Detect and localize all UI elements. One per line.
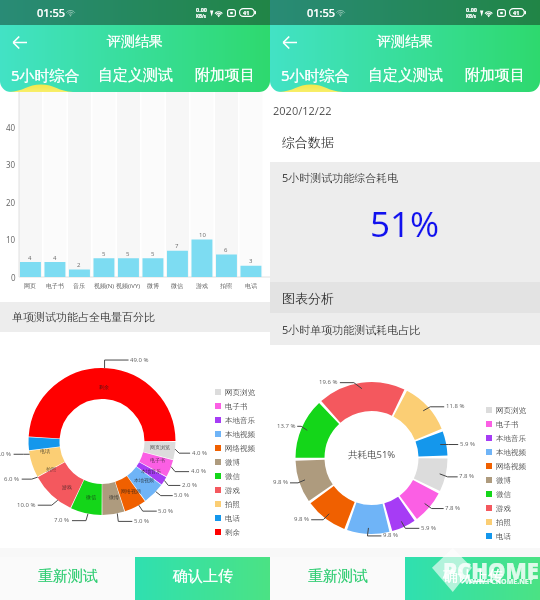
staticText: 30 xyxy=(6,159,16,170)
staticText: 附加项目 xyxy=(195,66,255,85)
staticText: 5.0 % xyxy=(134,517,150,525)
staticText: 评测结果 xyxy=(107,33,163,51)
staticText: 5.0 % xyxy=(158,507,174,515)
staticText: 19.6 % xyxy=(319,378,338,386)
staticText: 本地音乐 xyxy=(225,416,255,425)
staticText: 网页浏览 xyxy=(496,406,526,415)
staticText: 电话 xyxy=(225,514,240,523)
staticText: 10.0 % xyxy=(17,501,36,509)
button[interactable]: 自定义测试 xyxy=(360,58,450,92)
staticText: 41 xyxy=(243,9,250,16)
staticText: 音乐 xyxy=(73,282,85,290)
staticText: 5小时测试功能综合耗电 xyxy=(282,170,399,185)
staticText: 图表分析 xyxy=(282,290,334,306)
staticText: 微博 xyxy=(147,282,159,290)
staticText: 41 xyxy=(513,9,520,16)
staticText: 本地视频 xyxy=(496,448,526,457)
staticText: 网页 xyxy=(24,282,36,290)
staticText: 综合数据 xyxy=(282,134,334,150)
staticText: 5小时综合 xyxy=(11,65,80,85)
staticText: 网页浏览 xyxy=(225,388,255,397)
staticText: 5.9 % xyxy=(460,440,476,448)
staticText: KB/s xyxy=(466,13,477,19)
staticText: 20 xyxy=(6,197,16,208)
staticText: 3.0 % xyxy=(0,450,12,458)
staticText: 01:55 xyxy=(37,5,66,20)
staticText: 评测结果 xyxy=(377,33,433,51)
staticText: 微博 xyxy=(496,476,511,485)
staticText: 重新测试 xyxy=(308,567,368,586)
staticText: 游戏 xyxy=(225,486,240,495)
staticText: 电话 xyxy=(40,448,50,454)
staticText: 微信 xyxy=(171,282,183,290)
staticText: 自定义测试 xyxy=(98,66,173,85)
staticText: 游戏 xyxy=(196,282,208,290)
button[interactable]: 重新测试 xyxy=(0,557,135,600)
button[interactable]: 确认上传 xyxy=(135,557,270,600)
staticText: 7.0 % xyxy=(54,516,70,524)
staticText: 2020/12/22 xyxy=(273,103,332,118)
staticText: 网络视频 xyxy=(496,462,526,471)
staticText: 9.8 % xyxy=(294,515,310,523)
staticText: PCHOME xyxy=(443,555,539,585)
staticText: 电子书 xyxy=(46,282,64,290)
staticText: 10 xyxy=(6,234,16,245)
button[interactable]: Back xyxy=(276,29,302,55)
button[interactable]: Back xyxy=(6,29,32,55)
staticText: 0 xyxy=(11,272,16,283)
staticText: 视频(N) xyxy=(94,282,115,290)
staticText: 单项测试功能占全电量百分比 xyxy=(12,310,155,324)
staticText: 自定义测试 xyxy=(368,66,443,85)
staticText: 5 xyxy=(102,250,106,258)
staticText: 游戏 xyxy=(62,484,72,490)
staticText: 0.00 xyxy=(196,6,207,13)
staticText: 剩余 xyxy=(99,384,109,390)
staticText: 网络视频 xyxy=(121,488,141,494)
button[interactable]: 5小时综合 xyxy=(270,58,360,92)
staticText: 微信 xyxy=(225,472,240,481)
staticText: 网页浏览 xyxy=(150,444,170,450)
staticText: 本地音乐 xyxy=(496,434,526,443)
staticText: 5 xyxy=(126,250,130,258)
staticText: 7.8 % xyxy=(445,504,461,512)
staticText: 电子书 xyxy=(150,457,165,463)
staticText: 9.8 % xyxy=(383,531,399,539)
staticText: 本地视频 xyxy=(225,430,255,439)
button[interactable]: 确认上传 xyxy=(405,557,540,600)
staticText: 网络视频 xyxy=(225,444,255,453)
button[interactable]: 重新测试 xyxy=(270,557,405,600)
staticText: 电子书 xyxy=(225,402,248,411)
button[interactable]: 5小时综合 xyxy=(0,58,90,92)
staticText: 游戏 xyxy=(496,504,511,513)
staticText: 本地音乐 xyxy=(141,468,161,474)
staticText: WWW.PCHOME.NET xyxy=(465,577,533,587)
button[interactable]: 附加项目 xyxy=(450,58,540,92)
staticText: 4.0 % xyxy=(192,449,208,457)
staticText: 11.8 % xyxy=(446,402,465,410)
staticText: 2 xyxy=(77,261,81,269)
staticText: 确认上传 xyxy=(173,567,233,586)
button[interactable]: 附加项目 xyxy=(180,58,270,92)
staticText: 本地视频 xyxy=(134,477,154,483)
staticText: 微博 xyxy=(225,458,240,467)
staticText: 6 xyxy=(224,246,228,254)
staticText: 5 xyxy=(151,250,155,258)
staticText: 微信 xyxy=(86,494,96,500)
staticText: 附加项目 xyxy=(465,66,525,85)
staticText: 40 xyxy=(6,122,16,133)
staticText: 共耗电51% xyxy=(348,448,396,461)
staticText: 重新测试 xyxy=(38,567,98,586)
staticText: 4.0 % xyxy=(191,467,207,475)
staticText: 剩余 xyxy=(225,528,240,537)
staticText: 9.8 % xyxy=(273,478,289,486)
staticText: 3 xyxy=(249,257,253,265)
staticText: 拍照 xyxy=(46,466,56,472)
staticText: 确认上传 xyxy=(443,567,503,586)
staticText: KB/s xyxy=(196,13,207,19)
staticText: 微博 xyxy=(109,494,119,500)
staticText: 微信 xyxy=(496,490,511,499)
staticText: 5小时单项功能测试耗电占比 xyxy=(282,322,421,337)
button[interactable]: 自定义测试 xyxy=(90,58,180,92)
staticText: 5小时综合 xyxy=(281,65,350,85)
staticText: 4 xyxy=(28,254,32,262)
